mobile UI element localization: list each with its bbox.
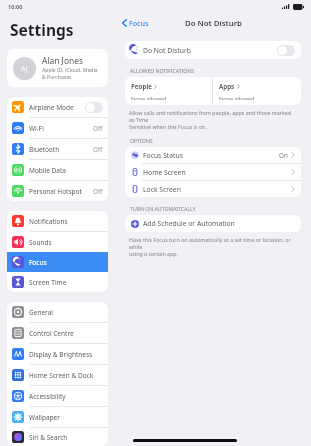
button[interactable]: Focus [7,252,108,272]
button[interactable]: Notifications [7,211,108,231]
button[interactable]: Accessibility [7,386,108,406]
staticText: Personal Hotspot [29,187,93,196]
button[interactable]: Toggle [277,45,295,56]
staticText: On [279,151,288,160]
button[interactable]: Lock Screen [125,181,301,197]
staticText: Apps [219,82,235,91]
button[interactable]: Wi-Fi [7,118,108,138]
staticText: Focus [129,18,149,28]
staticText: ALLOWED NOTIFICATIONS [130,67,195,74]
staticText: TURN ON AUTOMATICALLY [130,205,196,212]
button[interactable]: Mobile Data [7,160,108,180]
button[interactable]: Home Screen & Dock [7,365,108,385]
staticText: Sounds [29,238,103,247]
button[interactable]: Toggle [85,102,103,113]
staticText: General [29,308,103,317]
button[interactable]: Airplane Mode [7,97,108,117]
staticText: Focus [29,258,103,267]
staticText: None allowed [131,95,167,100]
staticText: OPTIONS [130,137,153,144]
staticText: Alan Jones [42,55,83,66]
button[interactable]: Personal Hotspot [7,181,108,201]
staticText: People [131,82,152,91]
staticText: Apple ID, iCloud, Media & Purchases [42,67,98,81]
staticText: Airplane Mode [29,103,85,112]
staticText: 10:00 [8,3,23,11]
button[interactable]: Wallpaper [7,407,108,427]
staticText: Accessibility [29,392,103,401]
staticText: Have this Focus turn on automatically at… [129,236,297,257]
button[interactable]: Sounds [7,232,108,252]
staticText: Focus Status [143,151,279,160]
staticText: Allow calls and notifications from peopl… [129,109,297,130]
button[interactable]: AJ [7,49,108,87]
button[interactable]: Control Centre [7,323,108,343]
button[interactable]: Add Schedule or Automation [125,215,301,232]
button[interactable]: Focus Status [125,147,301,163]
staticText: Off [93,187,103,196]
staticText: Siri & Search [29,433,103,442]
button[interactable]: Screen Time [7,272,108,292]
staticText: AJ [21,64,28,74]
button[interactable]: Focus [121,16,150,30]
button[interactable]: People [125,77,212,105]
button[interactable]: Siri & Search [7,428,108,446]
button[interactable]: Home Screen [125,164,301,180]
staticText: Settings [10,19,74,40]
staticText: Bluetooth [29,145,93,154]
staticText: Add Schedule or Automation [143,219,235,228]
staticText: Do Not Disturb [185,18,242,29]
staticText: Screen Time [29,278,103,287]
staticText: Display & Brightness [29,350,103,359]
button[interactable]: General [7,302,108,322]
staticText: Wi-Fi [29,124,93,133]
staticText: Home Screen & Dock [29,371,103,380]
staticText: Notifications [29,217,103,226]
staticText: None allowed [219,95,255,100]
button[interactable]: Display & Brightness [7,344,108,364]
staticText: Lock Screen [143,185,291,194]
staticText: Do Not Disturb [143,46,277,55]
staticText: Wallpaper [29,413,103,422]
staticText: Control Centre [29,329,103,338]
button[interactable]: Do Not Disturb [125,41,301,59]
staticText: Mobile Data [29,166,103,175]
staticText: Home Screen [143,168,291,177]
button[interactable]: Bluetooth [7,139,108,159]
staticText: Off [93,124,103,133]
button[interactable]: Apps [213,77,301,105]
staticText: Off [93,145,103,154]
